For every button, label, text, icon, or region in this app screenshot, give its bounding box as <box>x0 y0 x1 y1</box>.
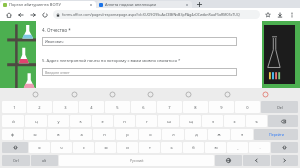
button[interactable]: ф <box>2 129 23 140</box>
button[interactable]: ж <box>208 129 230 140</box>
button[interactable]: 9 <box>209 101 234 113</box>
staticText: н <box>123 119 126 124</box>
button[interactable]: ч <box>51 142 72 153</box>
button[interactable]: ю <box>205 142 226 153</box>
button[interactable]: forms.office.com/pages/responsepage.aspx… <box>53 10 260 19</box>
button[interactable]: 0 <box>235 101 260 113</box>
button[interactable]: к <box>70 115 91 127</box>
button[interactable]: н <box>114 115 135 127</box>
button[interactable]: Theme <box>260 89 270 99</box>
button[interactable]: alt <box>31 155 58 166</box>
button[interactable]: щ <box>180 115 201 127</box>
button[interactable]: е <box>92 115 113 127</box>
button[interactable]: 7 <box>157 101 182 113</box>
button[interactable]: Иванович <box>42 37 237 46</box>
staticText: ы <box>33 132 37 137</box>
button[interactable]: More options <box>287 10 296 19</box>
button[interactable]: п <box>93 129 115 140</box>
button[interactable]: р <box>116 129 138 140</box>
button[interactable]: Введите ответ <box>42 68 237 76</box>
staticText: л <box>172 132 175 137</box>
button[interactable]: о <box>139 129 161 140</box>
button[interactable]: Bookmark <box>263 10 272 19</box>
button[interactable]: 8 <box>183 101 208 113</box>
button[interactable]: д <box>185 129 207 140</box>
button[interactable]: Microphone <box>183 89 193 99</box>
button[interactable]: Right <box>271 155 298 166</box>
button[interactable]: Shift <box>2 142 28 153</box>
button[interactable]: Back <box>16 10 25 19</box>
button[interactable]: Анкета подачи апелляции <box>96 1 192 8</box>
button[interactable]: GIF <box>107 89 117 99</box>
button[interactable]: New tab <box>192 0 206 8</box>
button[interactable]: 4 <box>79 101 104 113</box>
staticText: ш <box>167 119 171 124</box>
button[interactable]: ц <box>25 115 47 127</box>
button[interactable]: а <box>70 129 92 140</box>
button[interactable]: х <box>224 115 245 127</box>
staticText: д <box>195 132 198 137</box>
staticText: 5. Адрес электронной почты по которому с… <box>42 58 181 64</box>
button[interactable]: ь <box>161 142 182 153</box>
staticText: 3 <box>64 105 67 110</box>
staticText: в <box>57 132 60 137</box>
button[interactable]: Forward <box>28 10 37 19</box>
button[interactable]: т <box>139 142 160 153</box>
button[interactable]: в <box>47 129 69 140</box>
button[interactable]: г <box>136 115 157 127</box>
button[interactable]: Перейти <box>254 129 298 140</box>
button[interactable]: б <box>183 142 204 153</box>
staticText: о <box>149 132 152 137</box>
button[interactable]: 5 <box>105 101 130 113</box>
button[interactable]: з <box>202 115 223 127</box>
button[interactable]: Downloads <box>275 10 284 19</box>
button[interactable]: и <box>117 142 138 153</box>
staticText: г <box>146 119 148 124</box>
button[interactable]: у <box>48 115 69 127</box>
button[interactable]: Reload <box>40 10 49 19</box>
button[interactable]: 3 <box>53 101 78 113</box>
staticText: х <box>233 119 236 124</box>
button[interactable]: Портал абитуриента ВОПУ <box>0 1 96 8</box>
button[interactable]: с <box>73 142 94 153</box>
button[interactable]: Sticker <box>69 89 79 99</box>
staticText: э <box>241 132 243 137</box>
button[interactable]: м <box>95 142 116 153</box>
button[interactable]: л <box>162 129 184 140</box>
staticText: с <box>83 145 85 150</box>
button[interactable]: ъ <box>246 115 267 127</box>
staticText: м <box>104 145 108 150</box>
staticText: з <box>212 119 214 124</box>
staticText: 2 <box>38 105 41 110</box>
button[interactable]: ы <box>24 129 46 140</box>
button[interactable]: ш <box>158 115 179 127</box>
button[interactable]: Emoji <box>30 89 40 99</box>
staticText: Перейти <box>269 132 284 137</box>
staticText: т <box>149 145 151 150</box>
button[interactable]: Home <box>4 10 13 19</box>
staticText: ь <box>170 145 173 150</box>
button[interactable]: Left <box>243 155 270 166</box>
staticText: Портал абитуриента ВОПУ <box>9 2 89 7</box>
button[interactable]: Русский <box>59 155 214 166</box>
button[interactable]: Ctrl <box>2 155 30 166</box>
staticText: , <box>237 145 239 150</box>
button[interactable]: я <box>29 142 50 153</box>
button[interactable]: Backspace <box>268 115 298 127</box>
button[interactable]: Shift <box>271 142 298 153</box>
button[interactable]: 1 <box>2 101 26 113</box>
button[interactable]: 2 <box>27 101 52 113</box>
button[interactable]: Clipboard <box>222 89 232 99</box>
button[interactable]: Change language <box>215 155 242 166</box>
staticText: п <box>103 132 106 137</box>
staticText: 1 <box>13 105 16 110</box>
staticText: е <box>101 119 104 124</box>
button[interactable]: Settings <box>145 89 155 99</box>
button[interactable]: э <box>231 129 253 140</box>
button[interactable]: й <box>2 115 24 127</box>
staticText: 7 <box>168 105 171 110</box>
button[interactable]: 6 <box>131 101 156 113</box>
button[interactable]: Del <box>261 101 298 113</box>
